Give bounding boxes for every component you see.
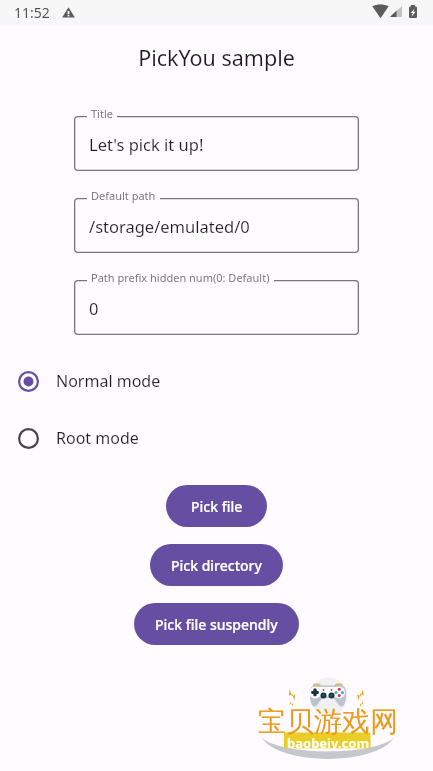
staticText: Pick file suspendly: [155, 615, 278, 634]
button[interactable]: Normal mode: [0, 370, 433, 392]
staticText: Pick file: [191, 497, 243, 516]
button[interactable]: Pick file suspendly: [134, 603, 299, 645]
staticText: Title: [91, 106, 113, 121]
staticText: baobeiy.com: [287, 734, 370, 752]
staticText: 11:52: [14, 3, 50, 22]
staticText: Root mode: [56, 427, 139, 449]
other: Warning: [62, 6, 75, 19]
other: Mobile signal: [390, 6, 402, 17]
staticText: Normal mode: [56, 370, 161, 392]
other: Battery charging: [409, 5, 417, 18]
staticText: Default path: [91, 188, 156, 203]
button[interactable]: Root mode: [0, 427, 433, 449]
staticText: 0: [89, 297, 99, 319]
staticText: 宝贝游戏网: [258, 704, 398, 739]
other: Wi-Fi: [372, 5, 389, 18]
button[interactable]: Pick directory: [150, 544, 283, 586]
staticText: Path prefix hidden num(0: Default): [91, 270, 270, 285]
button[interactable]: Default path: [74, 198, 359, 253]
staticText: PickYou sample: [0, 43, 433, 72]
staticText: Let's pick it up!: [89, 133, 204, 155]
button[interactable]: Path prefix hidden num(0: Default): [74, 280, 359, 335]
staticText: /storage/emulated/0: [89, 215, 250, 237]
button[interactable]: Title: [74, 116, 359, 171]
button[interactable]: Pick file: [166, 485, 267, 527]
staticText: Pick directory: [171, 556, 262, 575]
